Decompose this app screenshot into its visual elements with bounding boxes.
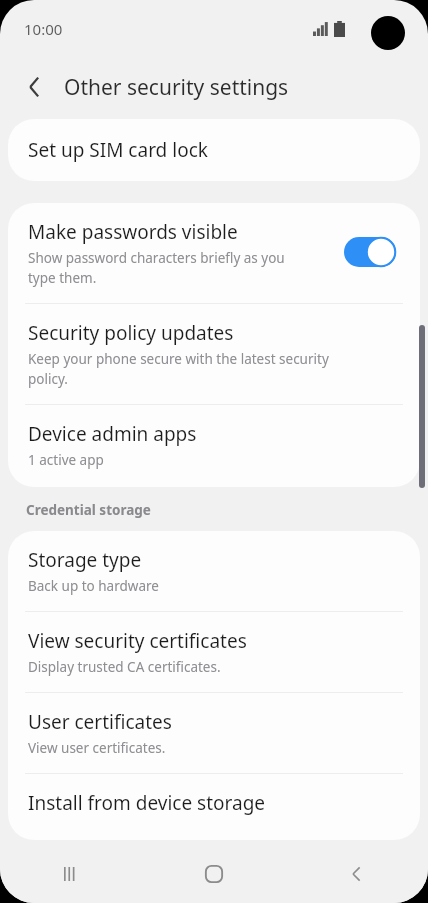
staticText: Set up SIM card lock xyxy=(28,137,208,163)
staticText: Make passwords visible xyxy=(28,219,238,245)
staticText: 1 active app xyxy=(28,451,104,469)
button[interactable]: User certificates xyxy=(8,693,420,773)
button[interactable]: Recents xyxy=(0,845,142,903)
button[interactable]: Back xyxy=(285,845,428,903)
button[interactable]: Security policy updates xyxy=(8,304,420,404)
staticText: Storage type xyxy=(28,547,142,573)
staticText: Keep your phone secure with the latest s… xyxy=(28,350,329,388)
staticText: Device admin apps xyxy=(28,421,197,447)
staticText: View user certificates. xyxy=(28,739,166,757)
staticText: Other security settings xyxy=(64,73,289,102)
staticText: Credential storage xyxy=(26,501,151,519)
button[interactable]: View security certificates xyxy=(8,612,420,692)
staticText: Show password characters briefly as you … xyxy=(28,249,285,287)
staticText: View security certificates xyxy=(28,628,247,654)
staticText: Security policy updates xyxy=(28,320,234,346)
button[interactable]: Make passwords visible xyxy=(8,203,420,303)
button[interactable]: Install from device storage xyxy=(8,774,420,840)
staticText: Install from device storage xyxy=(28,790,266,816)
staticText: User certificates xyxy=(28,709,172,735)
staticText: Display trusted CA certificates. xyxy=(28,658,221,676)
button[interactable]: Back xyxy=(18,69,54,105)
button[interactable]: Device admin apps xyxy=(8,405,420,487)
button[interactable]: Make passwords visible xyxy=(344,237,396,267)
staticText: Back up to hardware xyxy=(28,577,159,595)
button[interactable]: Storage type xyxy=(8,531,420,611)
staticText: 10:00 xyxy=(24,19,63,39)
button[interactable]: Set up SIM card lock xyxy=(8,119,420,181)
button[interactable]: Home xyxy=(142,845,285,903)
